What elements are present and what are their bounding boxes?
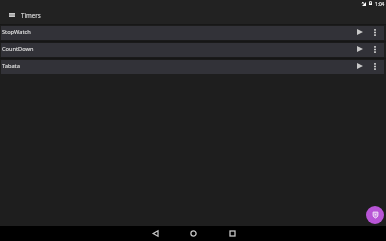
staticText: Timers (21, 11, 41, 19)
button[interactable]: Add timer (366, 206, 384, 224)
staticText: CountDown (2, 45, 34, 53)
button[interactable]: Back (148, 226, 163, 241)
button[interactable]: CountDown (1, 43, 384, 57)
button[interactable]: Start StopWatch (353, 25, 367, 39)
button[interactable]: More options for StopWatch (368, 25, 382, 39)
button[interactable]: Open navigation menu (5, 8, 18, 21)
button[interactable]: More options for CountDown (368, 42, 382, 56)
button[interactable]: Start CountDown (353, 42, 367, 56)
button[interactable]: Start Tabata (353, 59, 367, 73)
button[interactable]: Recent apps (225, 226, 240, 241)
button[interactable]: Home (186, 226, 201, 241)
staticText: 1:04 (375, 1, 385, 7)
button[interactable]: More options for Tabata (368, 59, 382, 73)
button[interactable]: StopWatch (1, 26, 384, 40)
staticText: StopWatch (2, 28, 31, 36)
button[interactable]: Tabata (1, 60, 384, 74)
staticText: Tabata (2, 62, 20, 70)
